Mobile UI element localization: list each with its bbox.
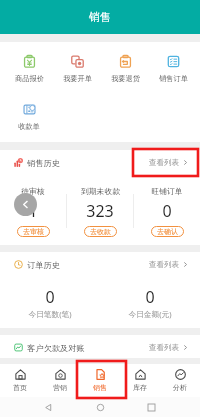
button[interactable]: 我要退货 <box>101 55 149 83</box>
staticText: 销售 <box>89 10 111 24</box>
button[interactable]: 销售订单 <box>149 55 197 83</box>
staticText: 我要开单 <box>63 74 92 83</box>
button[interactable]: 待审核 <box>0 180 66 240</box>
staticText: 1 <box>28 200 38 222</box>
button[interactable]: 0 <box>100 280 200 328</box>
button[interactable]: 库存 <box>120 364 160 397</box>
button[interactable]: 分析 <box>160 364 200 397</box>
staticText: 去审核 <box>23 227 44 236</box>
staticText: 我要退货 <box>111 74 140 83</box>
staticText: 到期未收款 <box>81 186 120 196</box>
button[interactable]: 查看列表 <box>145 154 192 171</box>
other: Back <box>45 404 52 411</box>
staticText: 营销 <box>53 383 67 392</box>
staticText: 0 <box>145 286 155 308</box>
staticText: 今日金额(元) <box>128 309 172 320</box>
staticText: 销售 <box>93 383 107 392</box>
other: Recents <box>148 404 155 411</box>
button[interactable]: 收款单 <box>5 103 53 131</box>
staticText: 查看列表 <box>149 260 179 269</box>
button[interactable]: 0 <box>0 280 100 328</box>
staticText: 销售订单 <box>159 74 188 83</box>
staticText: 分析 <box>173 383 187 392</box>
button[interactable]: 营销 <box>40 364 80 397</box>
staticText: 323 <box>86 200 114 222</box>
button[interactable]: 销售 <box>80 364 120 397</box>
button[interactable]: Previous <box>14 193 37 216</box>
button[interactable]: 我要开单 <box>53 55 101 83</box>
button[interactable]: 首页 <box>0 364 40 397</box>
button[interactable]: 查看列表 <box>145 339 192 356</box>
button[interactable]: 商品报价 <box>5 55 53 83</box>
staticText: 去收款 <box>90 227 111 236</box>
staticText: 收款单 <box>18 122 40 131</box>
staticText: 查看列表 <box>149 158 179 167</box>
staticText: 0 <box>162 200 172 222</box>
staticText: 库存 <box>133 383 147 392</box>
button[interactable]: 查看列表 <box>145 256 192 273</box>
button[interactable]: 到期未收款 <box>67 180 133 240</box>
staticText: 客户欠款及对账 <box>27 343 85 353</box>
staticText: 旺铺订单 <box>151 186 183 196</box>
staticText: 0 <box>45 286 55 308</box>
button[interactable]: 旺铺订单 <box>134 180 200 240</box>
staticText: 待审核 <box>21 186 45 196</box>
staticText: 商品报价 <box>15 74 44 83</box>
staticText: 查看列表 <box>149 343 179 352</box>
staticText: 首页 <box>13 383 27 392</box>
staticText: 去确认 <box>157 227 178 236</box>
staticText: 销售历史 <box>27 158 60 168</box>
staticText: 今日笔数(笔) <box>28 309 72 320</box>
other: Home <box>97 404 104 411</box>
staticText: 订单历史 <box>27 260 60 270</box>
